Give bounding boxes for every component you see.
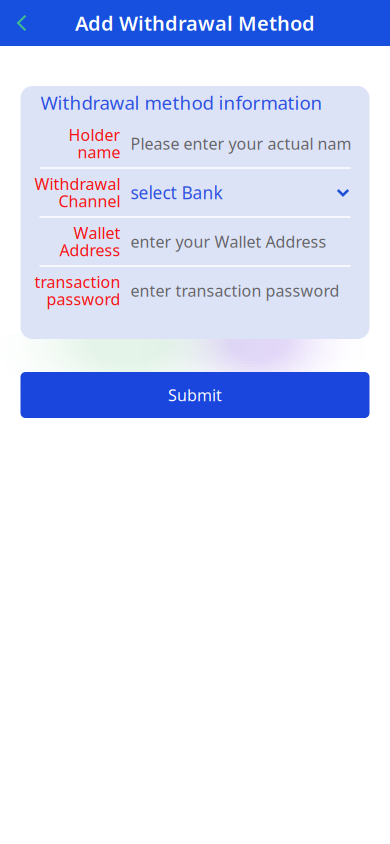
button[interactable]: Withdrawal <box>20 168 369 217</box>
staticText: transaction <box>34 271 120 292</box>
button[interactable]: Wallet <box>20 217 369 266</box>
staticText: password <box>46 288 120 310</box>
staticText: Submit <box>168 384 222 406</box>
staticText: Channel <box>58 190 120 212</box>
staticText: Withdrawal method information <box>40 90 322 115</box>
staticText: name <box>77 141 120 163</box>
button[interactable]: Back <box>0 0 44 46</box>
staticText: select Bank <box>130 181 222 204</box>
button[interactable]: Holder <box>20 119 369 168</box>
staticText: Please enter your actual nam <box>130 133 351 154</box>
staticText: Add Withdrawal Method <box>75 10 315 36</box>
staticText: Wallet <box>73 222 120 243</box>
button[interactable]: Submit <box>20 372 369 418</box>
staticText: Withdrawal <box>34 173 120 194</box>
staticText: Holder <box>68 124 120 145</box>
staticText: enter transaction password <box>130 280 339 301</box>
staticText: enter your Wallet Address <box>130 231 326 252</box>
button[interactable]: transaction <box>20 266 369 315</box>
staticText: Address <box>59 239 120 261</box>
